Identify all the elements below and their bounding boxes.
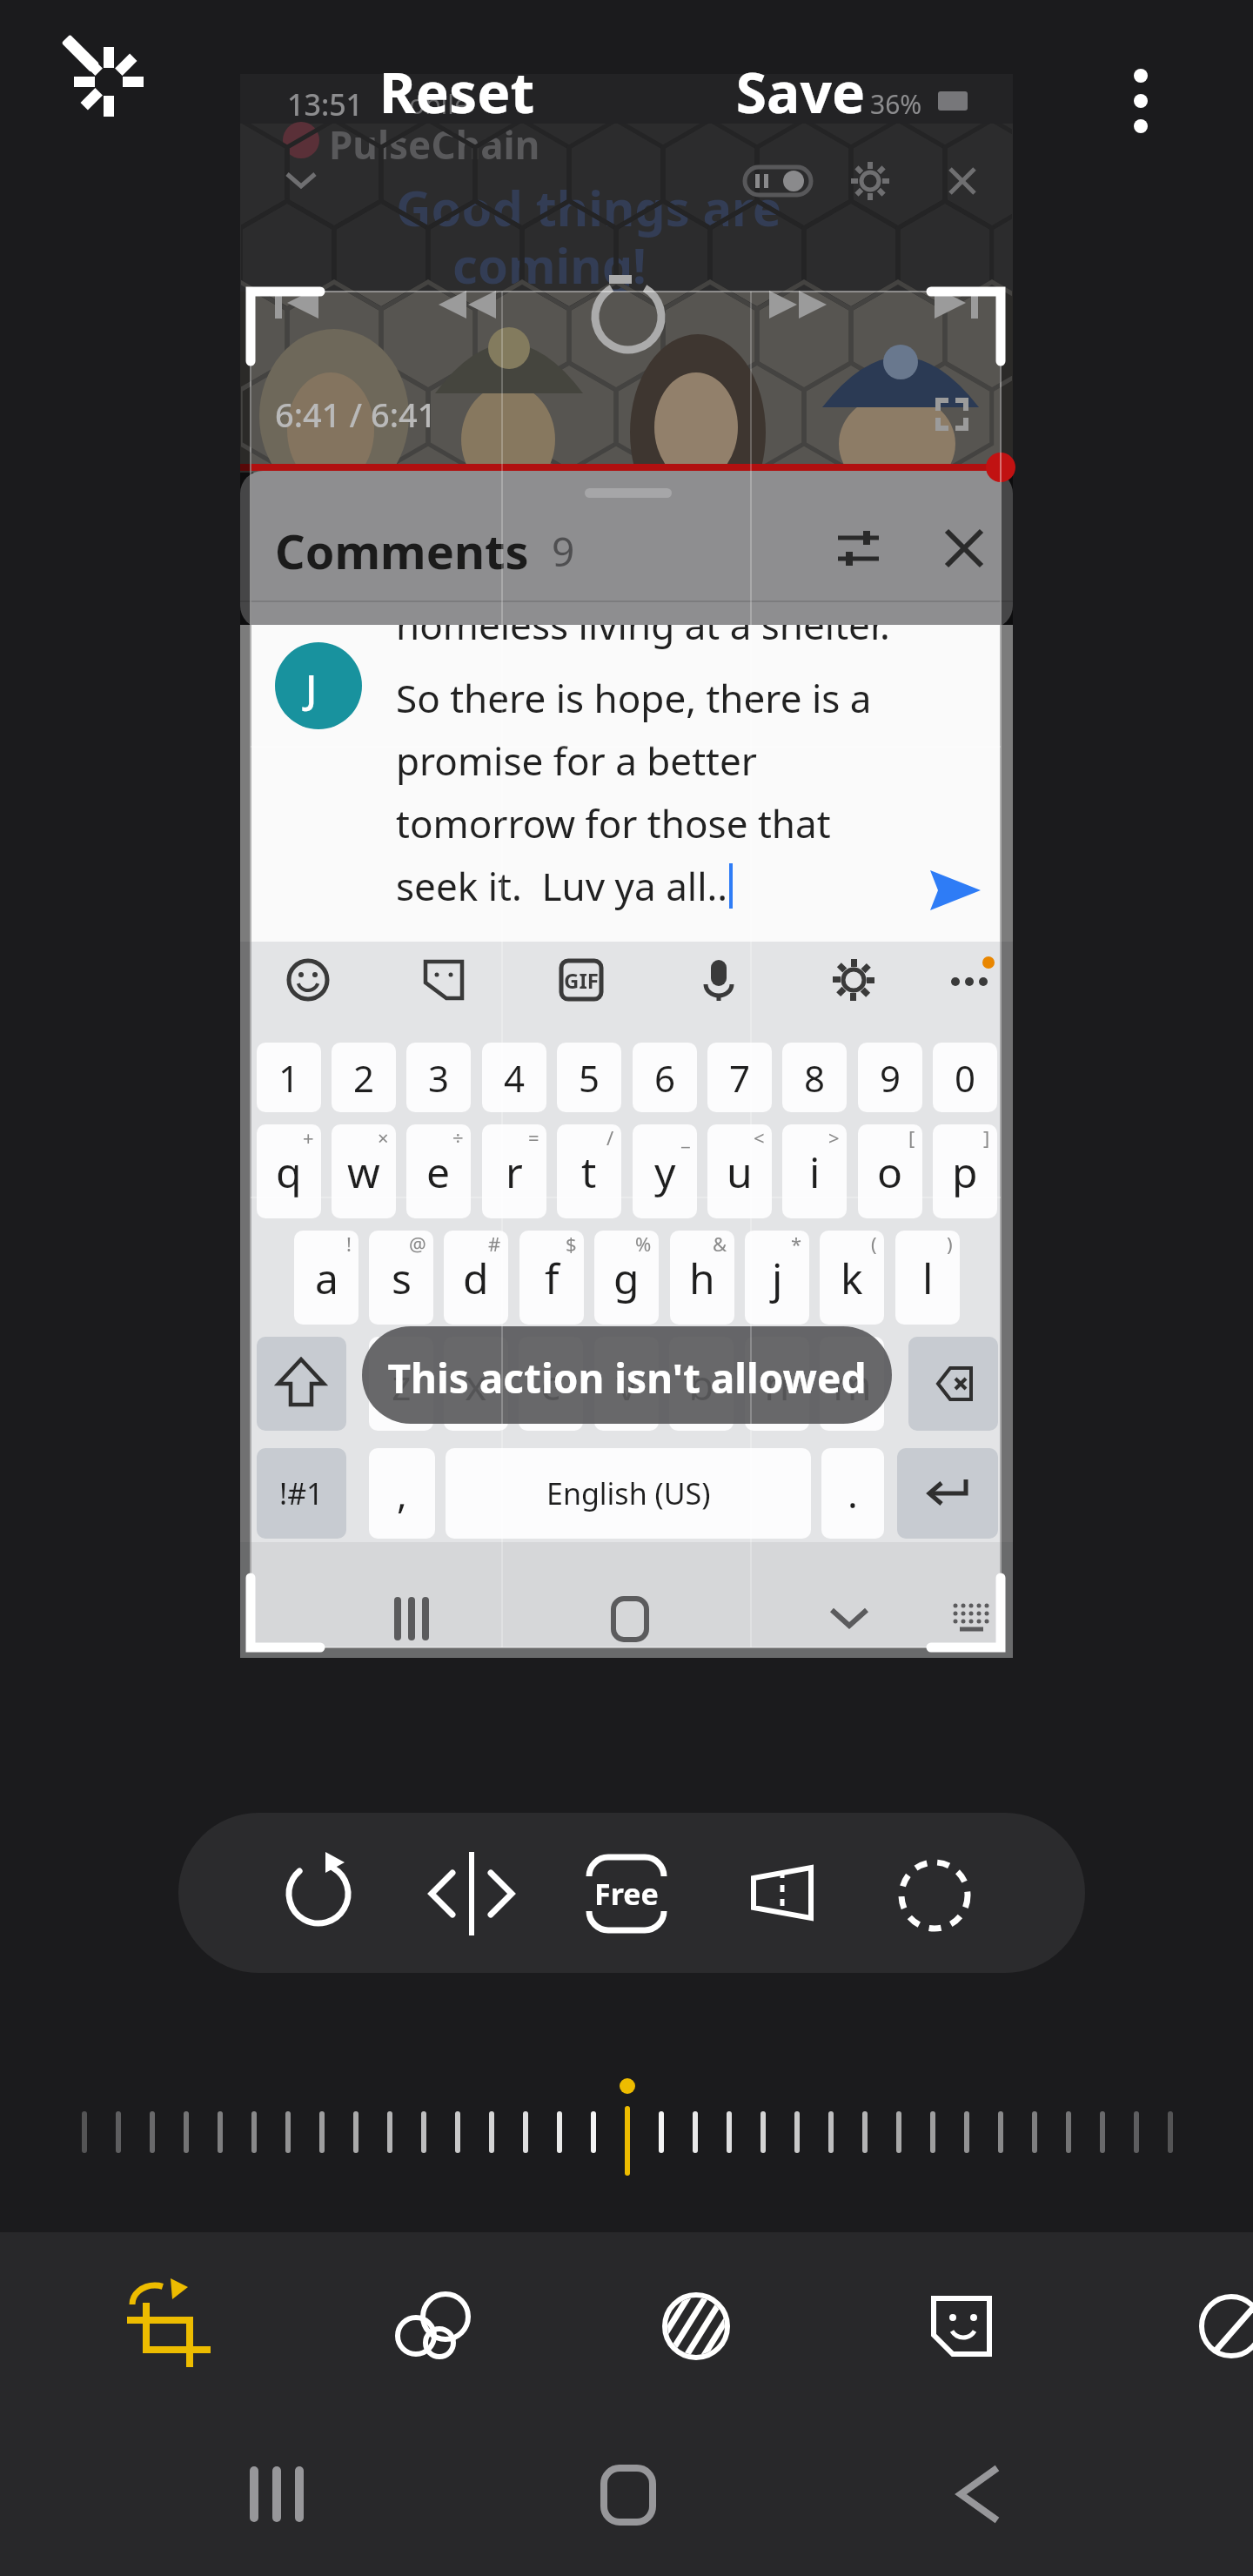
button[interactable] bbox=[709, 48, 892, 144]
staticText: e bbox=[426, 1144, 451, 1200]
staticText: k bbox=[841, 1250, 863, 1306]
staticText: h bbox=[689, 1250, 715, 1306]
staticText: , bbox=[397, 1467, 407, 1519]
staticText: ! bbox=[346, 1231, 352, 1257]
staticText: j bbox=[772, 1250, 783, 1306]
staticText: PulseChain bbox=[329, 118, 540, 171]
staticText: q bbox=[276, 1144, 302, 1200]
staticText: ( bbox=[871, 1231, 877, 1257]
staticText: % bbox=[635, 1231, 652, 1257]
staticText: d bbox=[463, 1250, 489, 1306]
staticText: l bbox=[922, 1250, 934, 1306]
staticText: @ bbox=[409, 1231, 426, 1257]
staticText: 13:51 bbox=[287, 84, 364, 124]
button[interactable] bbox=[415, 1836, 528, 1949]
staticText: c bbox=[540, 1356, 561, 1412]
button[interactable] bbox=[218, 2445, 339, 2541]
staticText: 9 bbox=[552, 524, 575, 579]
staticText: x bbox=[465, 1356, 487, 1412]
staticText: t bbox=[581, 1144, 597, 1200]
staticText: a bbox=[315, 1250, 338, 1306]
staticText: * bbox=[791, 1231, 802, 1257]
staticText: # bbox=[488, 1231, 501, 1257]
staticText: 6 bbox=[654, 1053, 676, 1103]
staticText: m bbox=[833, 1356, 872, 1412]
staticText: $ bbox=[566, 1231, 577, 1257]
button[interactable] bbox=[61, 35, 157, 131]
staticText: English (US) bbox=[546, 1473, 711, 1513]
staticText: + bbox=[303, 1124, 314, 1150]
staticText: obile bbox=[409, 86, 469, 122]
staticText: 8 bbox=[804, 1053, 826, 1103]
staticText: < bbox=[754, 1124, 765, 1150]
staticText: Free bbox=[581, 1874, 672, 1914]
staticText: o bbox=[877, 1144, 903, 1200]
staticText: p bbox=[952, 1144, 978, 1200]
staticText: !#1 bbox=[279, 1473, 324, 1513]
staticText: 36% bbox=[870, 86, 922, 122]
button[interactable] bbox=[261, 1836, 374, 1949]
staticText: b bbox=[688, 1356, 714, 1412]
staticText: 0 bbox=[955, 1053, 976, 1103]
staticText: u bbox=[727, 1144, 753, 1200]
button[interactable] bbox=[726, 1836, 839, 1949]
staticText: J bbox=[305, 661, 318, 716]
staticText: > bbox=[828, 1124, 840, 1150]
button[interactable] bbox=[104, 2263, 235, 2393]
staticText: 1 bbox=[278, 1053, 300, 1103]
staticText: Comments bbox=[275, 519, 529, 583]
staticText: _ bbox=[681, 1124, 690, 1150]
staticText: / bbox=[606, 1124, 614, 1150]
staticText: 3 bbox=[428, 1053, 450, 1103]
staticText: 4 bbox=[504, 1053, 526, 1103]
staticText: Save bbox=[709, 54, 892, 130]
staticText: s bbox=[392, 1250, 412, 1306]
staticText: coming! bbox=[452, 231, 647, 298]
button[interactable] bbox=[567, 2445, 689, 2541]
staticText: Reset bbox=[365, 54, 548, 130]
staticText: n bbox=[764, 1356, 790, 1412]
staticText: & bbox=[713, 1231, 727, 1257]
staticText: × bbox=[378, 1124, 389, 1150]
staticText: [ bbox=[908, 1124, 915, 1150]
staticText: promise for a better bbox=[396, 735, 757, 787]
staticText: This action isn't allowed bbox=[362, 1351, 892, 1405]
button[interactable] bbox=[878, 1836, 991, 1949]
staticText: 6:41 / 6:41 bbox=[275, 392, 437, 437]
staticText: y bbox=[654, 1144, 676, 1200]
staticText: tomorrow for those that bbox=[396, 797, 831, 849]
staticText: ÷ bbox=[452, 1124, 464, 1150]
staticText: seek it. Luv ya all.. bbox=[396, 860, 728, 912]
staticText: 2 bbox=[353, 1053, 375, 1103]
button[interactable] bbox=[1093, 35, 1189, 131]
staticText: f bbox=[545, 1250, 559, 1306]
staticText: = bbox=[528, 1124, 539, 1150]
button[interactable] bbox=[368, 2263, 499, 2393]
staticText: ] bbox=[983, 1124, 990, 1150]
staticText: 9 bbox=[880, 1053, 901, 1103]
staticText: z bbox=[392, 1356, 412, 1412]
staticText: Good things are bbox=[396, 174, 782, 240]
staticText: GIF bbox=[561, 966, 601, 995]
staticText: 7 bbox=[729, 1053, 751, 1103]
staticText: homeless living at a shelter. bbox=[396, 625, 890, 651]
staticText: ) bbox=[947, 1231, 953, 1257]
button[interactable] bbox=[917, 2445, 1039, 2541]
button[interactable] bbox=[896, 2263, 1027, 2393]
staticText: v bbox=[616, 1356, 638, 1412]
staticText: . bbox=[848, 1467, 858, 1519]
button[interactable] bbox=[631, 2263, 761, 2393]
button[interactable] bbox=[365, 48, 548, 144]
button[interactable] bbox=[569, 1836, 682, 1949]
staticText: r bbox=[506, 1144, 523, 1200]
staticText: g bbox=[613, 1250, 640, 1306]
staticText: So there is hope, there is a bbox=[396, 672, 872, 724]
button[interactable] bbox=[1162, 2263, 1253, 2393]
staticText: w bbox=[347, 1144, 380, 1200]
staticText: 5 bbox=[579, 1053, 600, 1103]
staticText: i bbox=[809, 1144, 821, 1200]
